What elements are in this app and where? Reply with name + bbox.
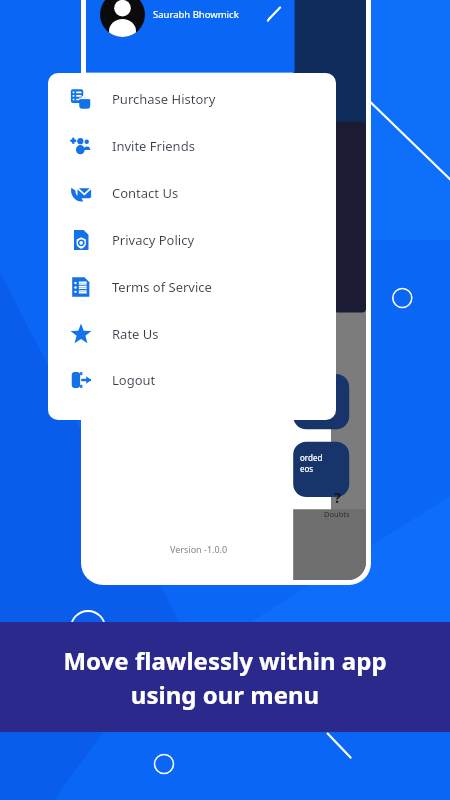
staticText: Doubts xyxy=(324,509,350,519)
staticText: orded eos xyxy=(300,452,323,474)
button[interactable]: Logout xyxy=(48,357,336,403)
staticText: ? xyxy=(334,487,342,507)
staticText: Rate Us xyxy=(112,325,159,343)
button[interactable]: Purchase History xyxy=(48,76,336,122)
button[interactable]: Contact Us xyxy=(48,170,336,216)
staticText: Purchase History xyxy=(112,90,216,108)
button[interactable]: Invite Friends xyxy=(48,123,336,169)
staticText: Privacy Policy xyxy=(112,231,195,249)
button[interactable]: Privacy Policy xyxy=(48,217,336,263)
staticText: Terms of Service xyxy=(112,278,212,296)
staticText: Version -1.0.0 xyxy=(170,543,228,555)
button[interactable]: Terms of Service xyxy=(48,264,336,310)
button[interactable]: Edit profile xyxy=(261,1,287,27)
staticText: Move flawlessly within app using our men… xyxy=(63,644,387,711)
button[interactable]: Rate Us xyxy=(48,311,336,357)
staticText: Logout xyxy=(112,371,156,389)
staticText: Invite Friends xyxy=(112,137,195,155)
staticText: Saurabh Bhowmick xyxy=(153,8,239,21)
staticText: Contact Us xyxy=(112,184,179,202)
